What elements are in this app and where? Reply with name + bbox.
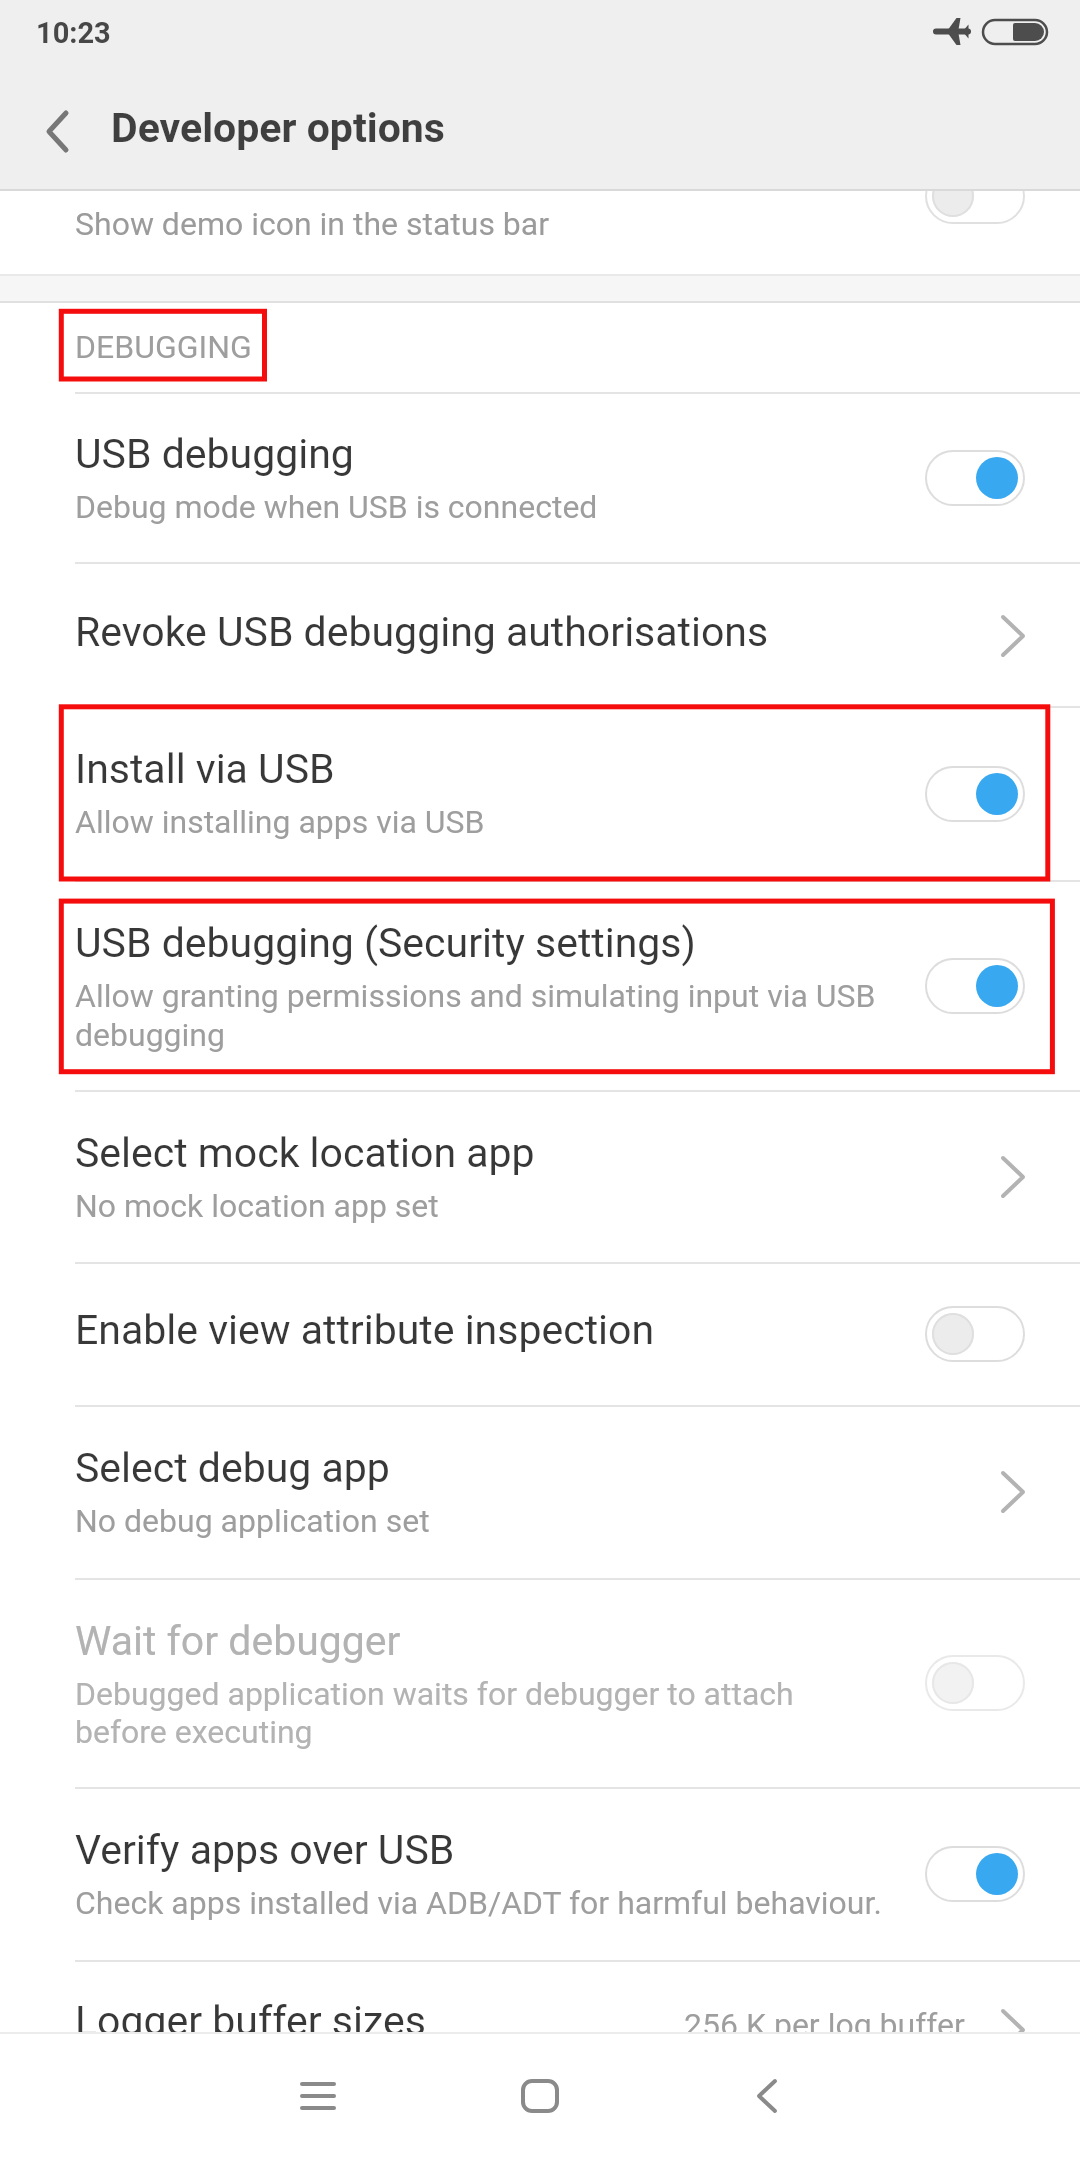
staticText: USB debugging (Security settings) — [75, 919, 696, 967]
button[interactable]: Show demo icon in the status bar — [0, 191, 1080, 274]
staticText: Allow granting permissions and simulatin… — [75, 977, 876, 1015]
staticText: Install via USB — [75, 745, 335, 793]
button[interactable]: Select debug app — [0, 1407, 1080, 1578]
staticText: Select debug app — [75, 1444, 390, 1492]
staticText: Debugged application waits for debugger … — [75, 1675, 794, 1713]
staticText: Check apps installed via ADB/ADT for har… — [75, 1884, 882, 1922]
staticText: Developer options — [111, 104, 445, 152]
button[interactable] — [925, 1846, 1025, 1902]
staticText: 10:23 — [36, 16, 111, 50]
staticText: Debug mode when USB is connected — [75, 488, 598, 526]
button[interactable]: Wait for debugger — [0, 1580, 1080, 1787]
button[interactable]: USB debugging — [0, 394, 1080, 562]
button[interactable]: Verify apps over USB — [0, 1789, 1080, 1960]
button[interactable] — [258, 2068, 378, 2160]
button[interactable]: DEBUGGING — [0, 303, 1080, 392]
staticText: Enable view attribute inspection — [75, 1306, 655, 1354]
staticText: No debug application set — [75, 1502, 430, 1540]
staticText: DEBUGGING — [75, 328, 252, 366]
button[interactable]: Enable view attribute inspection — [0, 1264, 1080, 1405]
button[interactable]: Revoke USB debugging authorisations — [0, 564, 1080, 706]
button[interactable] — [708, 2068, 828, 2160]
staticText: Select mock location app — [75, 1129, 535, 1177]
button[interactable] — [925, 1655, 1025, 1711]
staticText: before executing — [75, 1713, 313, 1751]
button[interactable] — [925, 1306, 1025, 1362]
button[interactable] — [480, 2068, 600, 2160]
staticText: 256 K per log buffer — [684, 2006, 965, 2044]
staticText: Logger buffer sizes — [75, 1997, 426, 2045]
staticText: Revoke USB debugging authorisations — [75, 608, 769, 656]
staticText: No mock location app set — [75, 1187, 439, 1225]
button[interactable]: Install via USB — [0, 708, 1080, 880]
staticText: Verify apps over USB — [75, 1826, 455, 1874]
button[interactable] — [925, 450, 1025, 506]
button[interactable]: Logger buffer sizes — [0, 1962, 1080, 2032]
button[interactable] — [925, 766, 1025, 822]
staticText: Allow installing apps via USB — [75, 803, 485, 841]
button[interactable]: Select mock location app — [0, 1092, 1080, 1262]
staticText: debugging — [75, 1016, 225, 1054]
button[interactable] — [20, 85, 96, 177]
staticText: Wait for debugger — [75, 1617, 401, 1665]
staticText: Show demo icon in the status bar — [75, 205, 550, 243]
staticText: USB debugging — [75, 430, 354, 478]
button[interactable] — [925, 958, 1025, 1014]
button[interactable]: USB debugging (Security settings) — [0, 882, 1080, 1090]
